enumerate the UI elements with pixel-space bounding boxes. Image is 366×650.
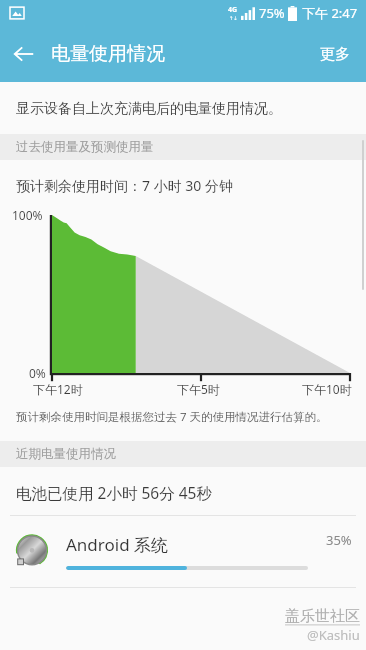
staticText: 4G [228, 5, 238, 15]
staticText: 0% [29, 365, 46, 381]
staticText: @Kashiu [307, 626, 360, 644]
staticText: 过去使用量及预测使用量 [16, 139, 154, 155]
staticText: 近期电量使用情况 [16, 446, 116, 462]
staticText: ↑↓ [229, 15, 238, 21]
staticText: 75% [259, 4, 285, 22]
button[interactable]: 更多 [304, 31, 366, 78]
staticText: 35% [326, 531, 352, 549]
button[interactable]: Back [0, 30, 48, 78]
staticText: 预计剩余使用时间是根据您过去 7 天的使用情况进行估算的。 [16, 409, 328, 425]
staticText: 电池已使用 2小时 56分 45秒 [16, 482, 212, 503]
staticText: 盖乐世社区 [285, 607, 360, 626]
staticText: 下午 2:47 [302, 4, 358, 22]
button[interactable]: Android 系统 [0, 516, 366, 587]
staticText: 下午12时 [33, 381, 83, 397]
staticText: 下午10时 [302, 381, 352, 397]
staticText: 预计剩余使用时间：7 小时 30 分钟 [16, 176, 233, 195]
staticText: 电量使用情况 [51, 42, 165, 66]
staticText: 下午5时 [177, 381, 220, 397]
staticText: 100% [12, 207, 43, 223]
staticText: 显示设备自上次充满电后的电量使用情况。 [16, 100, 282, 118]
staticText: Android 系统 [66, 533, 169, 556]
staticText: 更多 [320, 45, 350, 64]
